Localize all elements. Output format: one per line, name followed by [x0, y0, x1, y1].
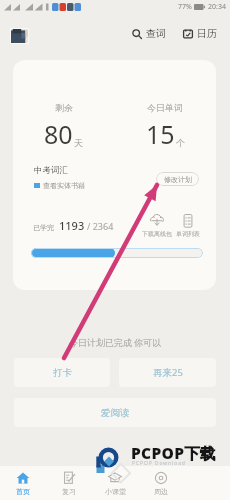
staticText: 20:34 [208, 2, 226, 12]
staticText: PCPOP下载 [131, 442, 216, 463]
button[interactable]: 小课堂 [92, 466, 138, 500]
button[interactable]: Profile [11, 29, 28, 43]
staticText: 打卡 [53, 367, 72, 379]
button[interactable]: 打卡 [14, 358, 110, 387]
staticText: 今日单词 [147, 102, 183, 113]
button[interactable]: 查词 [129, 23, 169, 44]
button[interactable]: 查看实体书籍 [34, 181, 85, 190]
staticText: 个 [176, 137, 185, 148]
staticText: 下载离线包 [142, 230, 172, 238]
staticText: 爱阅读 [101, 407, 130, 419]
staticText: 再来25 [153, 366, 183, 379]
staticText: 77% [178, 2, 192, 12]
staticText: 首页 [16, 487, 30, 496]
staticText: 修改计划 [164, 175, 192, 184]
button[interactable]: 首页 [0, 466, 46, 500]
staticText: 今日计划已完成 你可以 [69, 336, 162, 348]
button[interactable]: 修改计划 [156, 172, 199, 186]
staticText: PCPOP Download [132, 460, 186, 467]
button[interactable]: 周边 [138, 466, 184, 500]
button[interactable]: 复习 [46, 466, 92, 500]
staticText: 小课堂 [105, 487, 126, 496]
staticText: 周边 [154, 487, 168, 496]
staticText: 1193 [59, 218, 85, 233]
staticText: 已学完 [33, 223, 54, 232]
button[interactable]: 爱阅读 [14, 398, 216, 427]
button[interactable]: 再来25 [119, 358, 216, 387]
button[interactable]: 单词列表 [176, 214, 200, 238]
staticText: 15 [146, 117, 175, 151]
staticText: 日历 [197, 27, 217, 40]
button[interactable]: 日历 [180, 23, 220, 44]
staticText: 80 [44, 117, 73, 151]
staticText: 查词 [146, 27, 166, 40]
staticText: 复习 [62, 487, 76, 496]
staticText: 查看实体书籍 [43, 181, 85, 190]
staticText: 剩余 [55, 102, 73, 113]
staticText: 中考词汇 [34, 165, 68, 176]
button[interactable]: 下载离线包 [142, 214, 172, 238]
staticText: 天 [74, 137, 83, 148]
staticText: 单词列表 [176, 230, 200, 238]
staticText: / 2364 [87, 220, 114, 232]
